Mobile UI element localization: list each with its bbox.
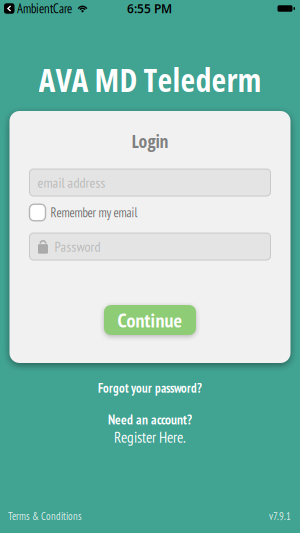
staticText: Terms & Conditions xyxy=(8,509,82,523)
button[interactable]: Remember my email xyxy=(29,204,137,221)
staticText: Remember my email xyxy=(50,204,137,221)
staticText: Continue xyxy=(117,307,182,333)
staticText: Password xyxy=(54,237,100,255)
staticText: Register Here. xyxy=(114,427,186,447)
staticText: v7.9.1 xyxy=(269,509,291,523)
button[interactable]: Back to AmbientCare xyxy=(4,0,72,17)
staticText: Forgot your password? xyxy=(98,380,202,396)
button[interactable]: Terms & Conditions xyxy=(8,509,82,523)
staticText: Login xyxy=(131,129,168,153)
button[interactable]: Forgot your password? xyxy=(98,381,202,395)
staticText: 6:55 PM xyxy=(127,0,172,16)
button[interactable]: email address xyxy=(29,169,270,196)
button[interactable]: Continue xyxy=(104,305,196,335)
staticText: AmbientCare xyxy=(17,0,72,17)
staticText: email address xyxy=(37,173,105,191)
button[interactable]: Register Here. xyxy=(114,430,186,444)
staticText: Need an account? xyxy=(108,411,192,428)
staticText: AVA MD Telederm xyxy=(38,58,261,101)
button[interactable]: Password xyxy=(29,233,270,260)
